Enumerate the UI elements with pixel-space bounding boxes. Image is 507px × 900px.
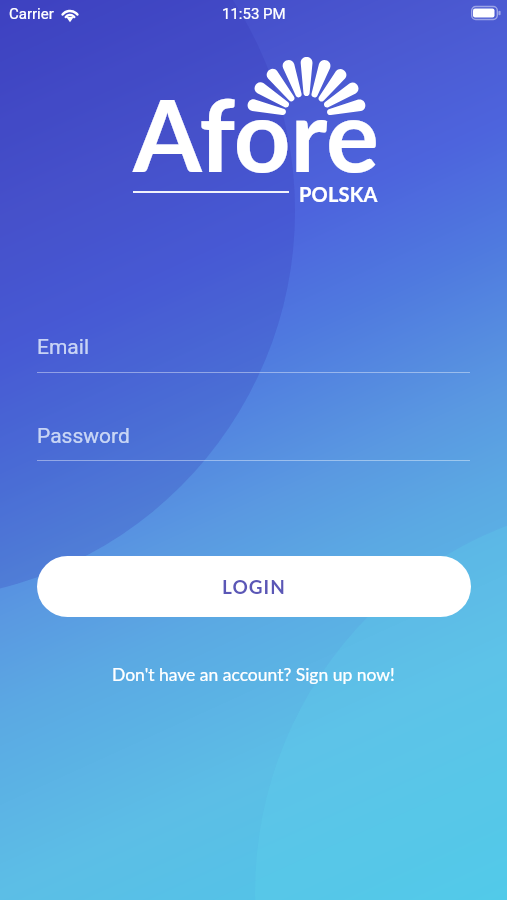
staticText: 11:53 PM xyxy=(222,5,286,23)
staticText: Afore xyxy=(133,74,379,193)
button[interactable]: Don't have an account? Sign up now! xyxy=(106,660,401,689)
staticText: Password xyxy=(37,424,130,449)
staticText: LOGIN xyxy=(222,575,286,598)
staticText: Email xyxy=(37,335,89,360)
staticText: Carrier xyxy=(9,5,54,23)
button[interactable]: Email xyxy=(37,328,470,372)
button[interactable]: LOGIN xyxy=(37,556,471,617)
staticText: Don't have an account? Sign up now! xyxy=(112,664,395,685)
staticText: POLSKA xyxy=(299,182,378,206)
button[interactable]: Password xyxy=(37,417,470,461)
